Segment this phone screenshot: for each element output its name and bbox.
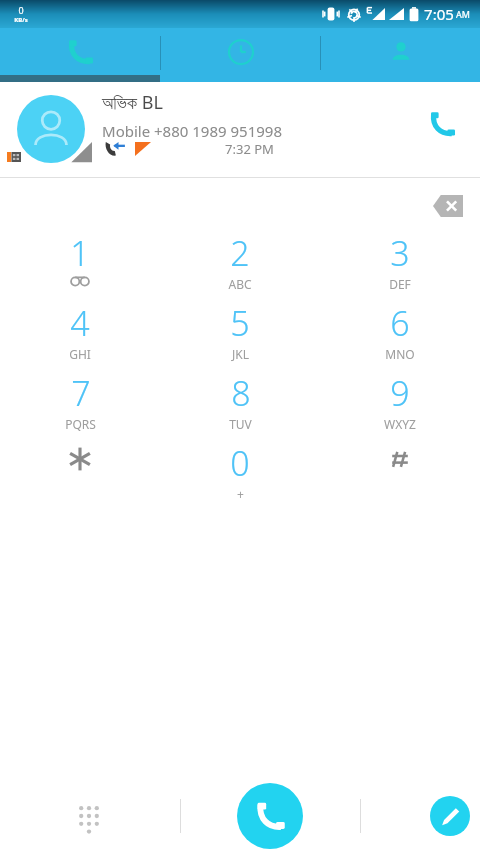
button[interactable]: 0 — [160, 440, 320, 510]
staticText: ABC — [228, 276, 252, 292]
staticText: 7:05 — [424, 4, 454, 24]
button[interactable]: Contacts tab — [321, 28, 480, 82]
staticText: + — [237, 486, 244, 502]
staticText: Mobile +880 1989 951998 — [102, 121, 282, 141]
button[interactable]: 7 — [0, 370, 160, 440]
staticText: GHI — [69, 346, 91, 362]
staticText: DEF — [389, 276, 411, 292]
staticText: KB/s — [14, 16, 28, 24]
staticText: TUV — [229, 416, 252, 432]
button[interactable] — [0, 440, 160, 510]
staticText: 3 — [390, 230, 410, 276]
staticText: PQRS — [65, 416, 96, 432]
button[interactable]: 4 — [0, 300, 160, 370]
staticText: 7:32 PM — [225, 140, 274, 158]
staticText: 0 — [18, 4, 24, 16]
staticText: JKL — [232, 346, 249, 362]
staticText: 5 — [230, 300, 250, 346]
button[interactable]: অভিক BL — [0, 82, 480, 177]
staticText: WXYZ — [384, 416, 416, 432]
button[interactable]: Edit number — [430, 796, 470, 836]
staticText: 7 — [71, 370, 91, 416]
staticText: 1 — [70, 230, 90, 276]
staticText: MNO — [385, 346, 415, 362]
button[interactable]: 3 — [320, 230, 480, 300]
staticText: 9 — [390, 370, 410, 416]
button[interactable]: 5 — [160, 300, 320, 370]
staticText: 4 — [70, 300, 90, 346]
staticText: 2 — [230, 230, 250, 276]
button[interactable]: 8 — [160, 370, 320, 440]
staticText: 6 — [390, 300, 410, 346]
button[interactable]: Dialpad — [65, 792, 113, 840]
button[interactable]: Call — [418, 100, 466, 148]
staticText: 0 — [230, 440, 250, 486]
staticText: 8 — [231, 370, 251, 416]
button[interactable]: 9 — [320, 370, 480, 440]
staticText: অভিক BL — [102, 90, 163, 115]
button[interactable]: Call log tab — [161, 28, 320, 82]
button[interactable]: 6 — [320, 300, 480, 370]
button[interactable]: 1 — [0, 230, 160, 300]
button[interactable]: Backspace — [424, 182, 472, 230]
button[interactable]: 2 — [160, 230, 320, 300]
button[interactable]: Recents tab — [0, 28, 160, 82]
button[interactable]: Call — [237, 783, 303, 849]
button[interactable] — [320, 440, 480, 510]
staticText: AM — [456, 8, 470, 20]
